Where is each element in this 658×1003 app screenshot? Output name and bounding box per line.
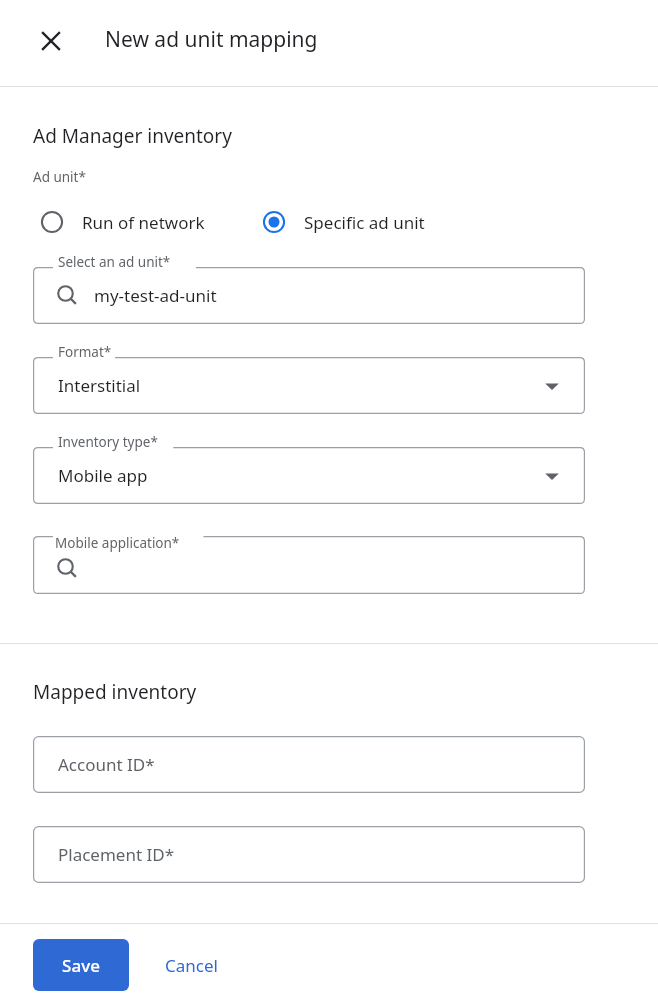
staticText: Cancel [165, 954, 218, 977]
button[interactable]: Mobile app [33, 447, 585, 504]
button[interactable]: Close [28, 18, 74, 64]
staticText: Account ID* [58, 753, 155, 776]
staticText: Format* [58, 343, 112, 361]
button[interactable]: Run of network [40, 199, 205, 245]
staticText: Interstitial [58, 374, 141, 397]
staticText: Mobile app [58, 464, 148, 487]
button[interactable]: Specific ad unit [262, 199, 425, 245]
staticText: Run of network [82, 211, 205, 234]
staticText: Ad unit* [33, 168, 86, 186]
button[interactable]: Placement ID* [33, 826, 585, 883]
button[interactable] [33, 536, 585, 594]
staticText: Inventory type* [58, 433, 158, 451]
button[interactable]: Save [33, 939, 129, 991]
staticText: Ad Manager inventory [33, 123, 232, 149]
staticText: Specific ad unit [304, 211, 425, 234]
button[interactable]: my-test-ad-unit [33, 267, 585, 324]
staticText: Mobile application* [55, 534, 180, 552]
staticText: Select an ad unit* [58, 253, 171, 271]
staticText: Mapped inventory [33, 679, 197, 705]
staticText: my-test-ad-unit [94, 284, 217, 307]
button[interactable]: Account ID* [33, 736, 585, 793]
staticText: Placement ID* [58, 843, 175, 866]
staticText: Save [62, 954, 100, 977]
staticText: New ad unit mapping [105, 25, 318, 54]
button[interactable]: Interstitial [33, 357, 585, 414]
button[interactable]: Cancel [145, 939, 237, 991]
